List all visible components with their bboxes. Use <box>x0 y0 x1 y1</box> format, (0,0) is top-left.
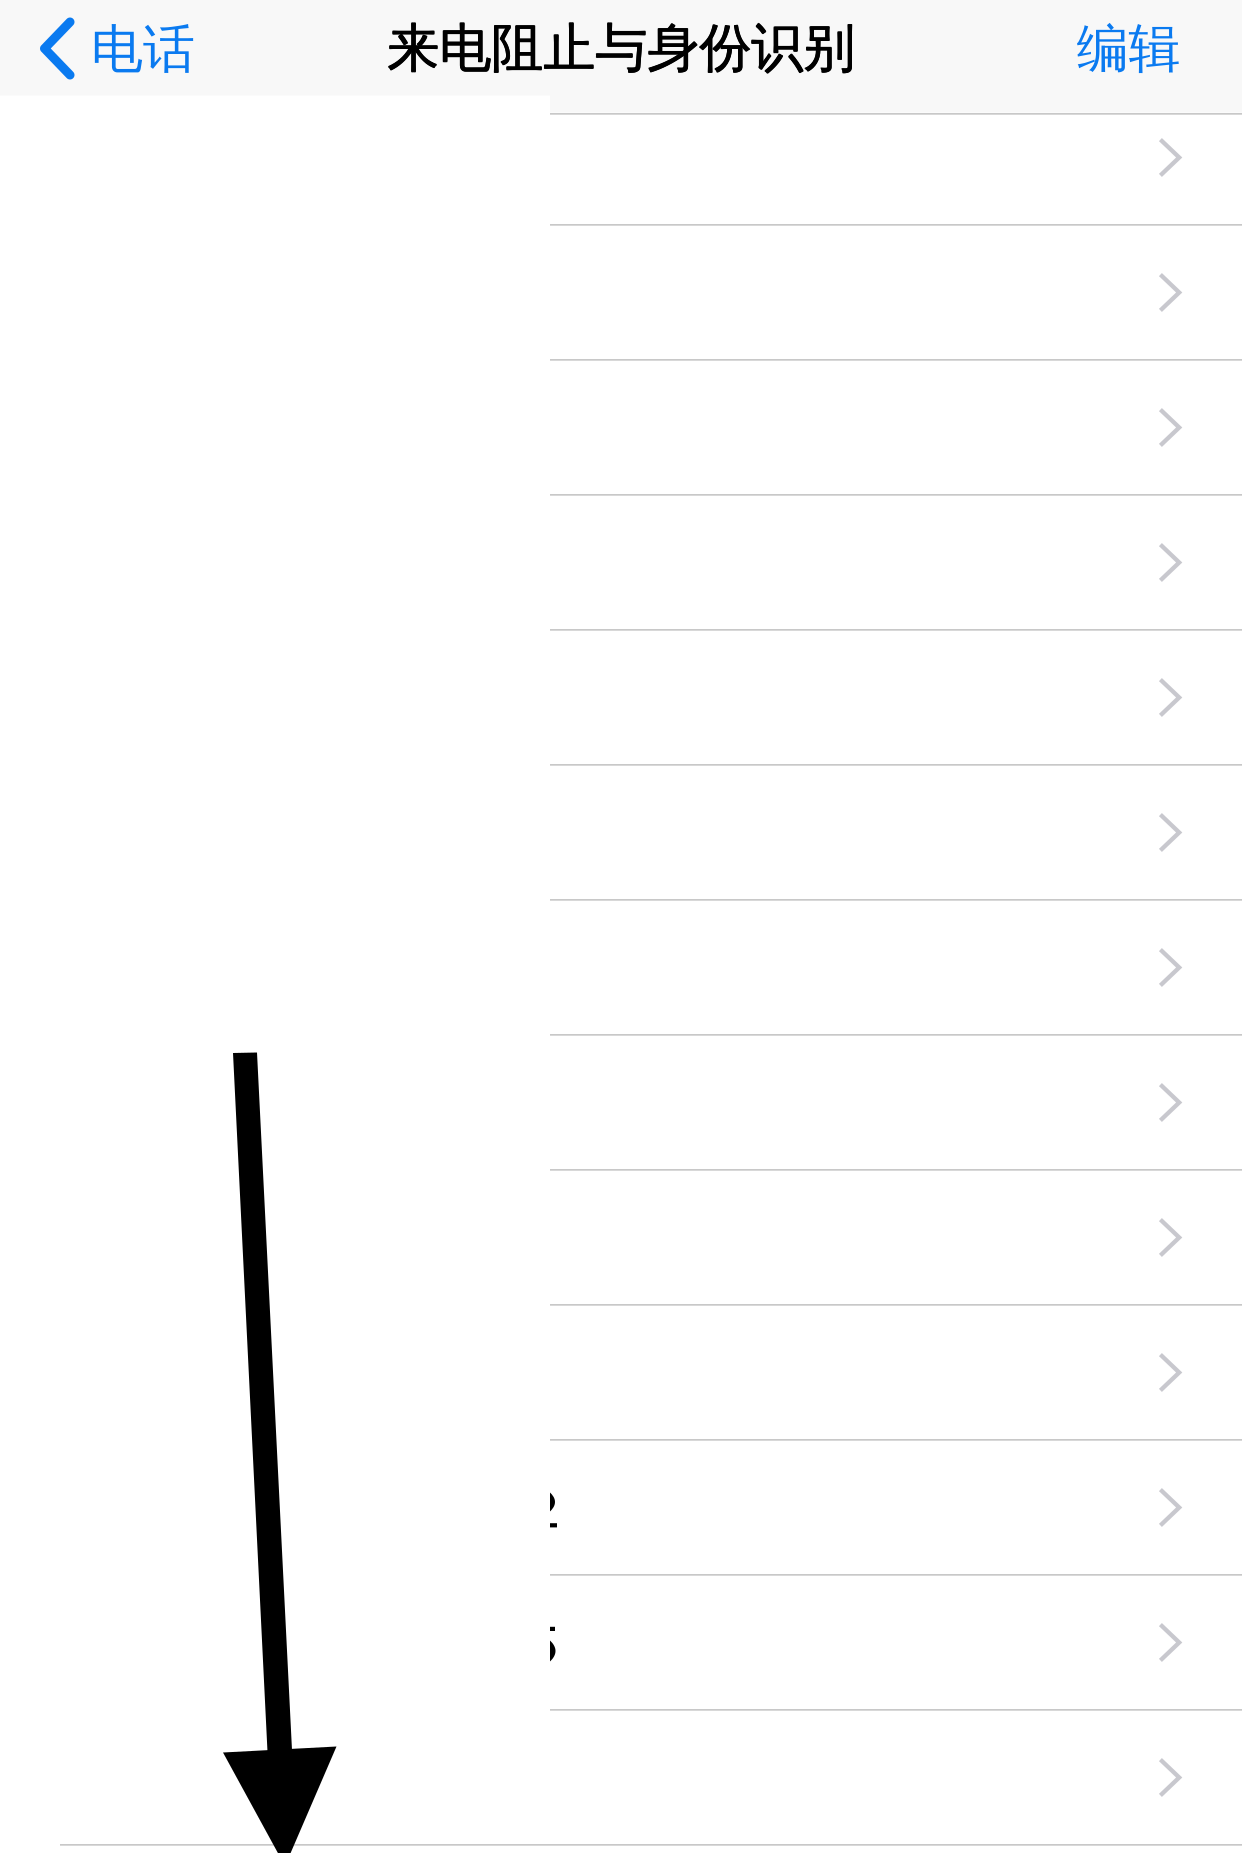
button[interactable]: 来电阻止 App <box>0 224 1242 359</box>
button[interactable]: 来电阻止 App <box>0 89 1242 224</box>
button[interactable]: 来电阻止 App <box>0 494 1242 629</box>
staticText: 编辑 <box>1076 17 1180 81</box>
button[interactable]: 来电阻止 App <box>0 1169 1242 1304</box>
button[interactable]: 来电阻止 App <box>0 359 1242 494</box>
button[interactable]: 来电阻止 App <box>0 1304 1242 1439</box>
button[interactable]: 来电阻止 App <box>0 629 1242 764</box>
button[interactable]: 编辑 <box>1043 1 1213 97</box>
button[interactable]: 电话 <box>0 0 230 113</box>
staticText: 电话 <box>91 18 195 81</box>
staticText: 来电阻止与身份识别 <box>387 16 855 80</box>
button[interactable]: 来电阻止 App <box>0 1709 1242 1844</box>
button[interactable]: 来电阻止 App <box>0 1439 1242 1574</box>
button[interactable]: 来电阻止 App <box>0 1034 1242 1169</box>
button[interactable]: 来电阻止 App <box>0 1574 1242 1709</box>
button[interactable]: 来电阻止 App <box>0 764 1242 899</box>
button[interactable]: 来电阻止 App <box>0 899 1242 1034</box>
